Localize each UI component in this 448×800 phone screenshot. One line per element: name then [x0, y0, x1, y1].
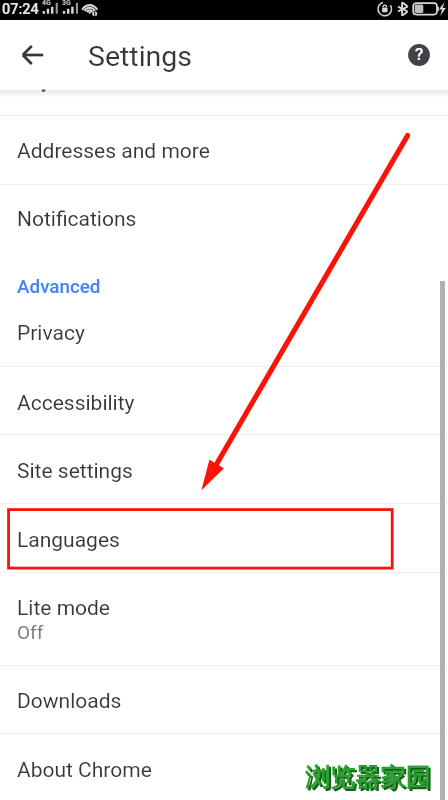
staticText: Off [17, 621, 44, 643]
button[interactable]: Addresses and more [0, 115, 448, 184]
staticText: Downloads [17, 689, 122, 714]
button[interactable]: Downloads [0, 665, 448, 734]
staticText: Addresses and more [17, 139, 210, 164]
staticText: ? [415, 44, 424, 64]
staticText: Site settings [17, 459, 133, 484]
staticText: Notifications [17, 207, 137, 232]
staticText: Accessibility [17, 391, 135, 416]
button[interactable]: Lite mode [0, 572, 448, 665]
button[interactable]: About Chrome [0, 734, 448, 800]
button[interactable]: Privacy [0, 308, 448, 366]
button[interactable]: Navigate back [13, 35, 53, 75]
staticText: Advanced [17, 276, 101, 298]
button[interactable]: Notifications [0, 184, 448, 262]
staticText: 07:24 [2, 1, 39, 18]
button[interactable]: Languages [0, 504, 448, 572]
staticText: About Chrome [17, 758, 152, 783]
staticText: Settings [88, 40, 193, 73]
button[interactable]: Accessibility [0, 366, 448, 435]
staticText: 浏览器家园 [307, 764, 433, 796]
button[interactable]: Help and feedback [399, 35, 439, 75]
staticText: Lite mode [17, 596, 111, 621]
staticText: Languages [17, 528, 120, 553]
button[interactable]: Site settings [0, 435, 448, 504]
staticText: 4G [42, 0, 51, 7]
staticText: 3G [62, 0, 71, 7]
staticText: 浏览器家园 [305, 762, 431, 794]
staticText: Privacy [17, 321, 85, 346]
